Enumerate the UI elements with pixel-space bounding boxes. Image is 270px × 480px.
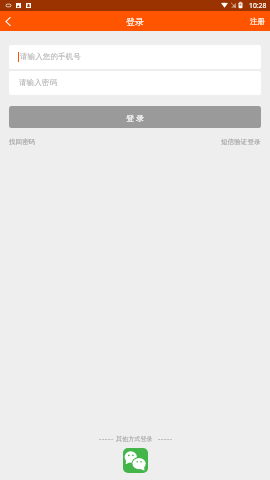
staticText: 请输入您的手机号 <box>20 52 81 62</box>
staticText: 10:28 <box>249 1 267 10</box>
staticText: 请输入密码 <box>19 78 57 88</box>
staticText: 其他方式登录 <box>116 435 153 443</box>
button[interactable]: WeChat login <box>123 448 148 473</box>
staticText: 短信验证登录 <box>221 138 261 146</box>
button[interactable]: Back <box>0 11 16 31</box>
staticText: 登录 <box>126 16 144 27</box>
button[interactable]: 请输入密码 <box>9 71 261 95</box>
button[interactable]: 找回密码 <box>9 138 36 146</box>
staticText: 找回密码 <box>9 138 36 146</box>
button[interactable]: 请输入您的手机号 <box>9 45 261 69</box>
button[interactable]: 登 录 <box>9 106 261 128</box>
button[interactable]: 短信验证登录 <box>221 138 261 146</box>
staticText: 注册 <box>250 17 265 26</box>
button[interactable]: 注册 <box>245 11 270 31</box>
staticText: 登 录 <box>126 112 145 123</box>
